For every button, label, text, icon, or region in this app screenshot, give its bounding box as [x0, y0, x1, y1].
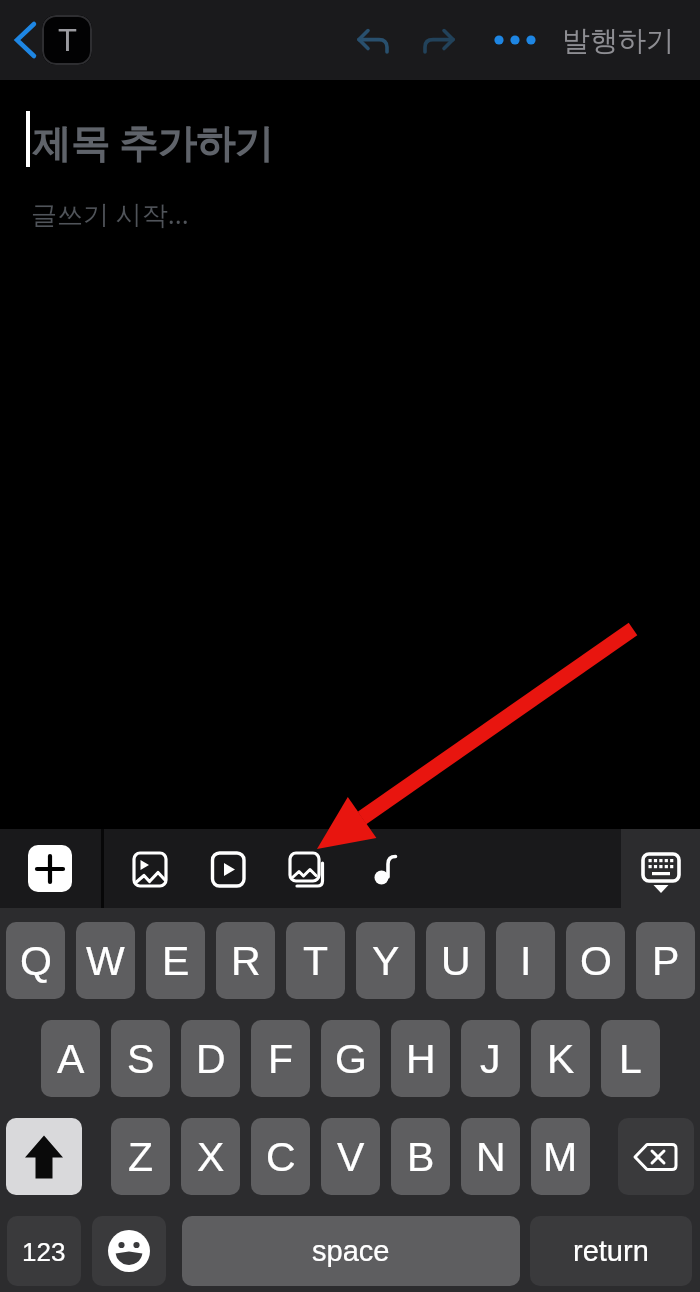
- button[interactable]: return: [530, 1216, 692, 1286]
- button[interactable]: [284, 845, 330, 893]
- staticText: T: [58, 23, 77, 58]
- staticText: S: [127, 1036, 155, 1082]
- staticText: W: [86, 938, 125, 984]
- staticText: 제목 추가하기: [32, 115, 273, 168]
- button[interactable]: [128, 847, 172, 891]
- staticText: return: [573, 1235, 649, 1267]
- staticText: Y: [372, 938, 400, 984]
- button[interactable]: R: [216, 922, 275, 999]
- staticText: L: [619, 1036, 642, 1082]
- button[interactable]: Q: [6, 922, 65, 999]
- button[interactable]: X: [181, 1118, 240, 1195]
- button[interactable]: 123: [7, 1216, 81, 1286]
- button[interactable]: E: [146, 922, 205, 999]
- staticText: Z: [128, 1134, 154, 1180]
- staticText: C: [266, 1134, 296, 1180]
- button[interactable]: T: [42, 15, 92, 65]
- staticText: K: [547, 1036, 575, 1082]
- button[interactable]: W: [76, 922, 135, 999]
- staticText: H: [406, 1036, 436, 1082]
- button[interactable]: S: [111, 1020, 170, 1097]
- button[interactable]: [366, 845, 406, 893]
- button[interactable]: G: [321, 1020, 380, 1097]
- staticText: J: [480, 1036, 501, 1082]
- button[interactable]: B: [391, 1118, 450, 1195]
- staticText: E: [162, 938, 190, 984]
- button[interactable]: 발행하기: [556, 0, 680, 80]
- button[interactable]: P: [636, 922, 695, 999]
- staticText: R: [231, 938, 261, 984]
- staticText: V: [337, 1134, 365, 1180]
- button[interactable]: [206, 847, 250, 891]
- button[interactable]: Z: [111, 1118, 170, 1195]
- button[interactable]: A: [41, 1020, 100, 1097]
- button[interactable]: L: [601, 1020, 660, 1097]
- staticText: G: [335, 1036, 367, 1082]
- button[interactable]: U: [426, 922, 485, 999]
- button[interactable]: Y: [356, 922, 415, 999]
- staticText: I: [520, 938, 532, 984]
- staticText: 글쓰기 시작...: [31, 196, 189, 232]
- button[interactable]: [488, 24, 542, 56]
- button[interactable]: [637, 848, 685, 896]
- staticText: A: [57, 1036, 85, 1082]
- staticText: M: [543, 1134, 578, 1180]
- button[interactable]: F: [251, 1020, 310, 1097]
- button[interactable]: I: [496, 922, 555, 999]
- button[interactable]: O: [566, 922, 625, 999]
- staticText: Q: [20, 938, 52, 984]
- button[interactable]: [348, 20, 392, 60]
- staticText: 123: [22, 1237, 66, 1266]
- button[interactable]: [6, 14, 44, 66]
- staticText: space: [312, 1235, 390, 1267]
- button[interactable]: D: [181, 1020, 240, 1097]
- staticText: 발행하기: [562, 23, 674, 58]
- staticText: N: [476, 1134, 506, 1180]
- button[interactable]: [6, 1118, 82, 1195]
- button[interactable]: T: [286, 922, 345, 999]
- button[interactable]: [28, 845, 72, 892]
- button[interactable]: V: [321, 1118, 380, 1195]
- staticText: U: [441, 938, 471, 984]
- button[interactable]: M: [531, 1118, 590, 1195]
- button[interactable]: N: [461, 1118, 520, 1195]
- button[interactable]: H: [391, 1020, 450, 1097]
- staticText: O: [580, 938, 612, 984]
- button[interactable]: J: [461, 1020, 520, 1097]
- button[interactable]: [92, 1216, 166, 1286]
- staticText: X: [197, 1134, 225, 1180]
- button[interactable]: [618, 1118, 694, 1195]
- button[interactable]: K: [531, 1020, 590, 1097]
- button[interactable]: [420, 20, 464, 60]
- staticText: P: [652, 938, 680, 984]
- button[interactable]: C: [251, 1118, 310, 1195]
- staticText: T: [303, 938, 329, 984]
- button[interactable]: space: [182, 1216, 520, 1286]
- staticText: F: [268, 1036, 294, 1082]
- staticText: B: [407, 1134, 435, 1180]
- staticText: D: [196, 1036, 226, 1082]
